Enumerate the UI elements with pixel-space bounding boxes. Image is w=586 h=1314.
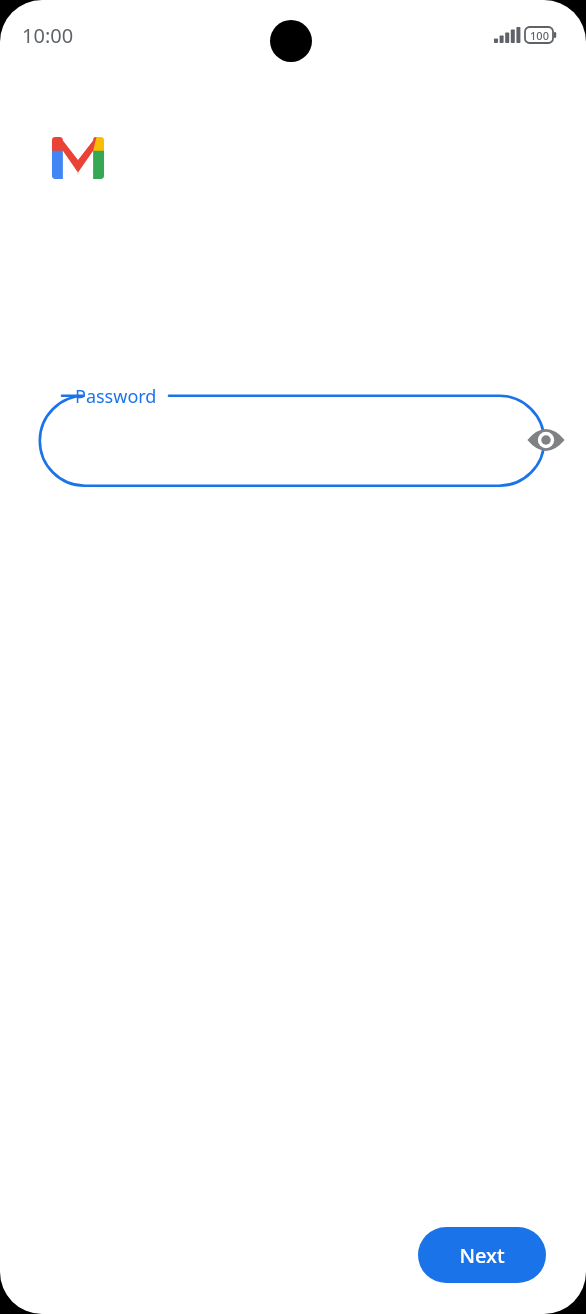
button[interactable]: Password: [38, 383, 548, 491]
staticText: Password: [75, 384, 157, 409]
button[interactable]: Show password: [516, 410, 576, 470]
other: Gmail: [50, 135, 106, 181]
staticText: 10:00: [22, 22, 74, 49]
button[interactable]: Next: [418, 1227, 546, 1283]
staticText: Next: [459, 1242, 505, 1269]
staticText: 100: [530, 28, 549, 43]
